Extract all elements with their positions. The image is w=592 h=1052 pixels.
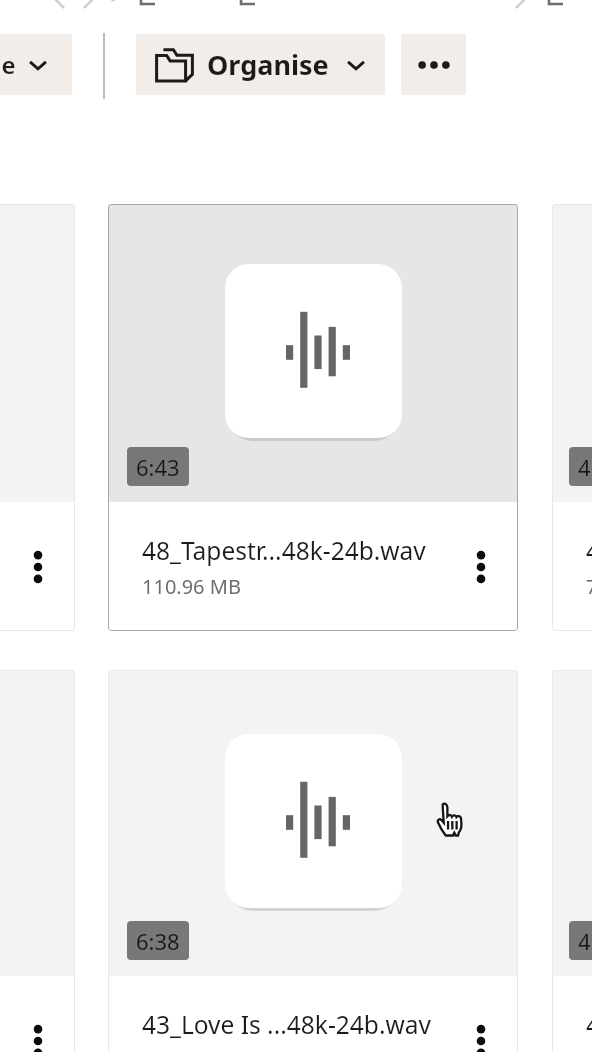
staticText: Organise (207, 46, 329, 83)
button[interactable]: More (18, 1021, 58, 1052)
button[interactable]: More (0, 670, 75, 1052)
staticText: 4:09 (578, 926, 592, 956)
button[interactable]: File (0, 34, 72, 95)
staticText: 48_Tapestr...48k-24b.wav (142, 534, 426, 567)
staticText: 72.41 MB (586, 573, 592, 600)
button[interactable]: More (0, 204, 75, 631)
button[interactable]: 6:43 (108, 204, 518, 631)
button[interactable]: More (18, 547, 58, 587)
staticText: 44_Tapestr...48k-24b.wav (586, 534, 592, 567)
button[interactable]: 4:09 (552, 204, 592, 631)
button[interactable]: Organise (136, 34, 385, 95)
staticText: 110.96 MB (142, 573, 241, 600)
staticText: 4:09 (578, 452, 592, 482)
button[interactable]: More (461, 547, 501, 587)
staticText: File (0, 48, 16, 81)
staticText: 44_Tapestr...48k-24b.wav (586, 1008, 592, 1041)
staticText: 43_Love Is ...48k-24b.wav (142, 1008, 431, 1041)
button[interactable]: 6:38 (108, 670, 518, 1052)
button[interactable]: 4:09 (552, 670, 592, 1052)
button[interactable]: More options (401, 34, 466, 95)
staticText: 6:43 (136, 452, 180, 482)
button[interactable]: More (461, 1021, 501, 1052)
staticText: 6:38 (136, 926, 180, 956)
